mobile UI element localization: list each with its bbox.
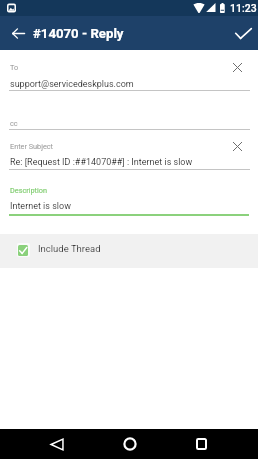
staticText: To <box>10 63 19 72</box>
staticText: Internet is slow <box>10 201 71 212</box>
staticText: cc <box>10 119 18 128</box>
staticText: Re: [Request ID :##14070##] : Internet i… <box>10 157 193 168</box>
staticText: Description <box>10 186 47 195</box>
button[interactable]: Include Thread <box>0 234 258 268</box>
button[interactable]: Clear <box>226 56 248 78</box>
button[interactable]: Home <box>110 429 147 459</box>
button[interactable]: Send <box>230 16 258 50</box>
button[interactable]: Back <box>5 16 31 50</box>
staticText: Enter Subject <box>10 142 53 151</box>
staticText: Include Thread <box>38 243 101 254</box>
staticText: support@servicedeskplus.com <box>10 79 134 90</box>
staticText: 11:23 <box>230 2 257 14</box>
button[interactable]: Recents <box>182 429 220 459</box>
button[interactable]: Back <box>38 429 76 459</box>
button[interactable]: Clear <box>226 135 248 157</box>
staticText: #14070 - Reply <box>33 26 124 41</box>
